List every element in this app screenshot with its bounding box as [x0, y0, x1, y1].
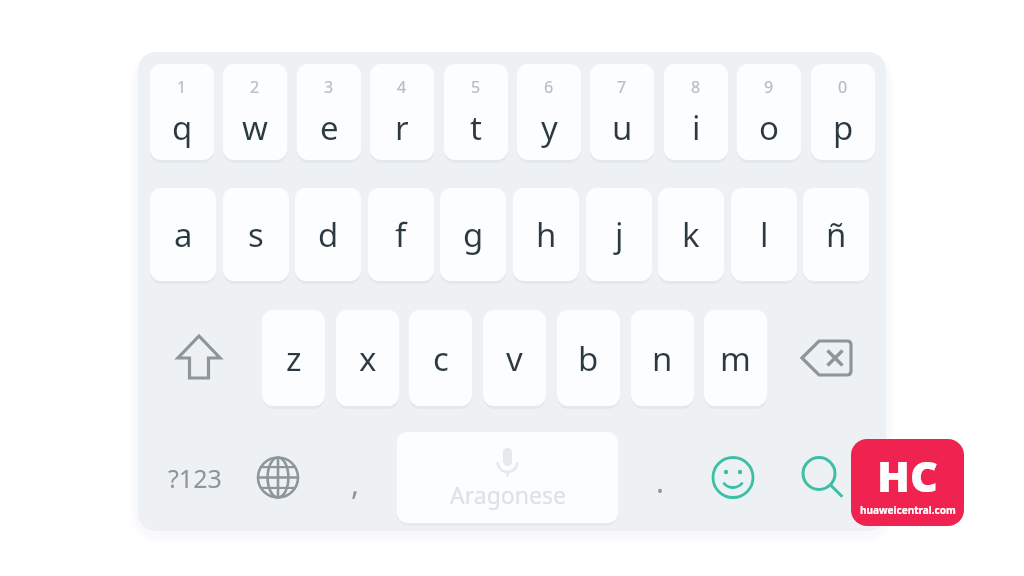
- button[interactable]: 6: [517, 64, 581, 160]
- staticText: o: [759, 105, 779, 150]
- staticText: .: [656, 461, 665, 502]
- staticText: z: [286, 336, 302, 381]
- button[interactable]: c: [409, 310, 472, 406]
- button[interactable]: x: [336, 310, 399, 406]
- staticText: HC: [877, 446, 938, 505]
- staticText: r: [395, 105, 409, 150]
- button[interactable]: Search: [792, 432, 852, 523]
- staticText: y: [541, 105, 558, 150]
- button[interactable]: 7: [590, 64, 654, 160]
- staticText: a: [174, 212, 193, 257]
- button[interactable]: ?123: [158, 432, 232, 523]
- staticText: 8: [691, 76, 701, 98]
- staticText: 3: [324, 76, 334, 98]
- staticText: d: [318, 212, 339, 257]
- staticText: Aragonese: [450, 479, 566, 510]
- button[interactable]: Backspace: [794, 310, 862, 406]
- button[interactable]: b: [557, 310, 620, 406]
- button[interactable]: g: [440, 188, 506, 281]
- staticText: ,: [351, 463, 360, 504]
- staticText: v: [506, 336, 523, 381]
- button[interactable]: m: [704, 310, 767, 406]
- button[interactable]: j: [586, 188, 652, 281]
- staticText: j: [615, 212, 624, 257]
- staticText: 9: [764, 76, 774, 98]
- button[interactable]: 8: [664, 64, 728, 160]
- button[interactable]: 0: [811, 64, 875, 160]
- button[interactable]: d: [295, 188, 361, 281]
- button[interactable]: z: [262, 310, 325, 406]
- button[interactable]: l: [731, 188, 797, 281]
- staticText: m: [720, 336, 751, 381]
- staticText: x: [359, 336, 377, 381]
- staticText: w: [242, 105, 268, 150]
- button[interactable]: 1: [150, 64, 214, 160]
- button[interactable]: .: [634, 432, 686, 523]
- button[interactable]: 4: [370, 64, 434, 160]
- staticText: u: [612, 105, 633, 150]
- staticText: n: [652, 336, 673, 381]
- staticText: 0: [838, 76, 848, 98]
- staticText: p: [833, 105, 854, 150]
- button[interactable]: f: [368, 188, 434, 281]
- staticText: s: [248, 212, 264, 257]
- staticText: 6: [544, 76, 554, 98]
- button[interactable]: a: [150, 188, 216, 281]
- button[interactable]: k: [658, 188, 724, 281]
- button[interactable]: ,: [328, 432, 382, 523]
- button[interactable]: 9: [737, 64, 801, 160]
- button[interactable]: Shift: [165, 310, 233, 406]
- staticText: 4: [397, 76, 407, 98]
- button[interactable]: ñ: [803, 188, 869, 281]
- button[interactable]: Emoji: [703, 432, 763, 523]
- button[interactable]: s: [223, 188, 289, 281]
- staticText: t: [470, 105, 482, 150]
- button[interactable]: 3: [297, 64, 361, 160]
- staticText: huaweicentral.com: [860, 503, 956, 517]
- staticText: 5: [471, 76, 481, 98]
- button[interactable]: n: [631, 310, 694, 406]
- staticText: q: [172, 105, 193, 150]
- staticText: e: [320, 105, 339, 150]
- staticText: h: [536, 212, 557, 257]
- staticText: ñ: [826, 212, 847, 257]
- button[interactable]: Change language: [248, 432, 308, 523]
- staticText: g: [463, 212, 484, 257]
- button[interactable]: h: [513, 188, 579, 281]
- staticText: b: [578, 336, 599, 381]
- staticText: i: [692, 105, 701, 150]
- staticText: ?123: [168, 461, 222, 495]
- staticText: 7: [617, 76, 627, 98]
- staticText: 2: [250, 76, 260, 98]
- button[interactable]: Aragonese: [397, 432, 618, 523]
- staticText: l: [760, 212, 769, 257]
- staticText: f: [395, 212, 407, 257]
- staticText: 1: [177, 76, 187, 98]
- button[interactable]: 2: [223, 64, 287, 160]
- button[interactable]: v: [483, 310, 546, 406]
- staticText: k: [682, 212, 700, 257]
- staticText: c: [433, 336, 449, 381]
- button[interactable]: 5: [444, 64, 508, 160]
